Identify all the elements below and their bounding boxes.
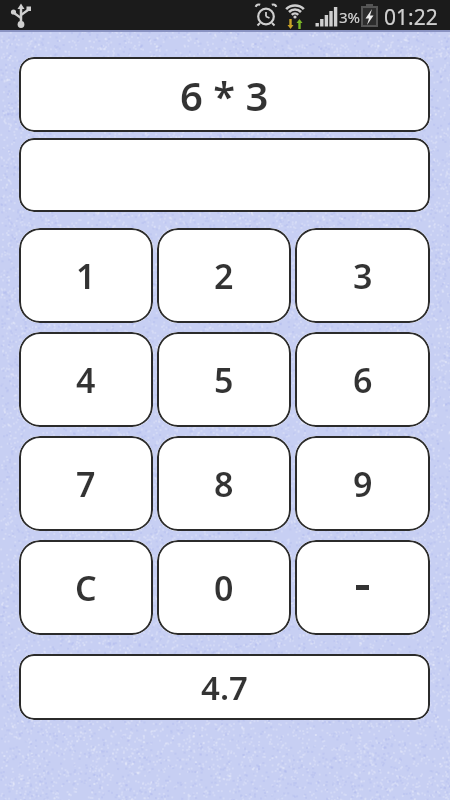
staticText: 6 * 3 (180, 68, 269, 122)
button[interactable]: 6 (295, 332, 430, 427)
button[interactable]: 9 (295, 436, 430, 531)
staticText: 4.7 (201, 665, 248, 710)
staticText: 2 (214, 253, 234, 299)
staticText: C (75, 565, 97, 611)
staticText: 3 (353, 253, 373, 299)
staticText: 0 (214, 565, 234, 611)
staticText: 8 (214, 461, 234, 507)
staticText: 7 (76, 461, 96, 507)
staticText: 6 (353, 357, 373, 403)
staticText: 9 (353, 461, 373, 507)
staticText: 4 (76, 357, 96, 403)
button[interactable]: 8 (157, 436, 291, 531)
button[interactable]: 4 (19, 332, 153, 427)
button[interactable]: 0 (157, 540, 291, 635)
button[interactable]: 2 (157, 228, 291, 323)
button[interactable]: 5 (157, 332, 291, 427)
button[interactable]: 1 (19, 228, 153, 323)
staticText: 01:22 (384, 3, 438, 32)
button[interactable]: 7 (19, 436, 153, 531)
button[interactable]: C (19, 540, 153, 635)
button[interactable]: 4.7 (19, 654, 430, 720)
button[interactable]: 3 (295, 228, 430, 323)
button[interactable] (19, 138, 430, 212)
staticText: 3% (339, 7, 361, 27)
staticText: 1 (76, 253, 96, 299)
button[interactable] (295, 540, 430, 635)
button[interactable]: 6 * 3 (19, 57, 430, 132)
staticText: 5 (214, 357, 234, 403)
